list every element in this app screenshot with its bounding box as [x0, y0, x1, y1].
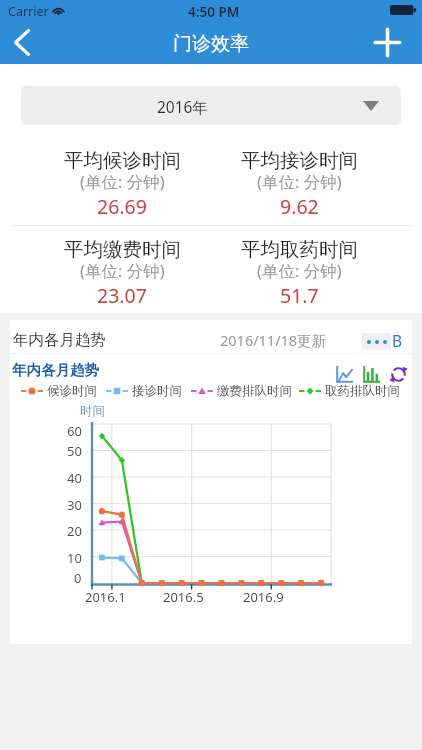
staticText: 平均候诊时间	[64, 148, 181, 173]
staticText: 平均缴费时间	[64, 237, 181, 262]
button[interactable]: 平均候诊时间	[37, 148, 207, 218]
staticText: 23.07	[97, 282, 147, 309]
button[interactable]: Refresh	[389, 366, 408, 383]
staticText: 候诊时间	[47, 383, 97, 399]
button[interactable]: 平均接诊时间	[214, 148, 384, 218]
staticText: 门诊效率	[173, 32, 249, 56]
staticText: (单位: 分钟)	[257, 170, 342, 193]
staticText: 2016.5	[163, 588, 204, 604]
staticText: 9.62	[280, 193, 319, 220]
staticText: 26.69	[97, 193, 147, 220]
button[interactable]: 取药排队时间	[299, 383, 400, 399]
staticText: 30	[67, 496, 82, 512]
button[interactable]: Bar chart view	[363, 366, 380, 383]
button[interactable]: 缴费排队时间	[191, 383, 292, 399]
button[interactable]: 接诊时间	[106, 383, 182, 399]
staticText: 2016年	[157, 96, 208, 117]
staticText: 40	[67, 469, 82, 485]
staticText: 接诊时间	[132, 383, 182, 399]
staticText: 50	[67, 442, 82, 458]
button[interactable]: 平均缴费时间	[37, 237, 207, 307]
staticText: 时间	[80, 403, 105, 419]
staticText: 0	[74, 569, 82, 585]
button[interactable]: Line chart view	[336, 366, 353, 383]
button[interactable]: 2016年	[21, 86, 401, 125]
staticText: 2016.1	[85, 588, 126, 604]
staticText: 平均接诊时间	[241, 148, 358, 173]
staticText: 60	[67, 422, 82, 438]
staticText: 10	[67, 549, 82, 565]
button[interactable]: 平均取药时间	[214, 237, 384, 307]
staticText: 年内各月趋势	[12, 361, 99, 379]
staticText: 取药排队时间	[325, 383, 400, 399]
staticText: (单位: 分钟)	[80, 259, 165, 282]
button[interactable]: Back	[0, 20, 44, 64]
staticText: Carrier	[8, 3, 49, 20]
staticText: 年内各月趋势	[13, 330, 106, 350]
staticText: 平均取药时间	[241, 237, 358, 262]
staticText: 2016/11/18更新	[220, 330, 327, 350]
staticText: (单位: 分钟)	[257, 259, 342, 282]
button[interactable]: Add	[364, 20, 410, 64]
staticText: B	[392, 330, 403, 351]
button[interactable]: 候诊时间	[21, 383, 97, 399]
staticText: (单位: 分钟)	[80, 170, 165, 193]
staticText: 20	[67, 522, 82, 538]
staticText: 51.7	[280, 282, 319, 309]
staticText: 2016.9	[243, 588, 284, 604]
staticText: 缴费排队时间	[217, 383, 292, 399]
staticText: 4:50 PM	[188, 3, 240, 21]
button[interactable]: More options	[362, 333, 391, 350]
